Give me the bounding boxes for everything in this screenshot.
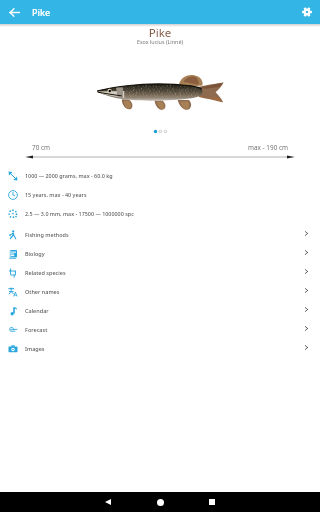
button[interactable]: Other names	[0, 282, 320, 301]
button[interactable]: Calendar	[0, 301, 320, 320]
button[interactable]: Images	[0, 339, 320, 358]
staticText: Pike	[32, 6, 51, 18]
button[interactable]: Home	[152, 494, 168, 510]
staticText: 15 years, max - 40 years	[25, 191, 87, 198]
staticText: 70 cm	[32, 143, 51, 152]
button[interactable]: Back	[100, 494, 116, 510]
staticText: Other names	[25, 288, 60, 295]
button[interactable]: Biology	[0, 244, 320, 263]
staticText: max - 190 cm	[248, 143, 288, 152]
button[interactable]: Back	[3, 1, 25, 23]
staticText: Images	[25, 345, 45, 352]
button[interactable]: Forecast	[0, 320, 320, 339]
staticText: Pike	[0, 25, 320, 41]
staticText: 1000 — 2000 grams, max - 60.0 kg	[25, 172, 113, 179]
button[interactable]: Related species	[0, 263, 320, 282]
staticText: Biology	[25, 250, 45, 257]
staticText: Fishing methods	[25, 231, 69, 238]
button[interactable]: Fishing methods	[0, 225, 320, 244]
button[interactable]: Recents	[204, 494, 220, 510]
staticText: Related species	[25, 269, 66, 276]
staticText: 2.5 — 3.0 mm, max - 17500 — 1000000 spc	[25, 210, 134, 217]
staticText: Esox lucius (Linné)	[0, 38, 320, 45]
button[interactable]: Settings	[296, 1, 318, 23]
staticText: Calendar	[25, 307, 49, 314]
staticText: Forecast	[25, 326, 48, 333]
